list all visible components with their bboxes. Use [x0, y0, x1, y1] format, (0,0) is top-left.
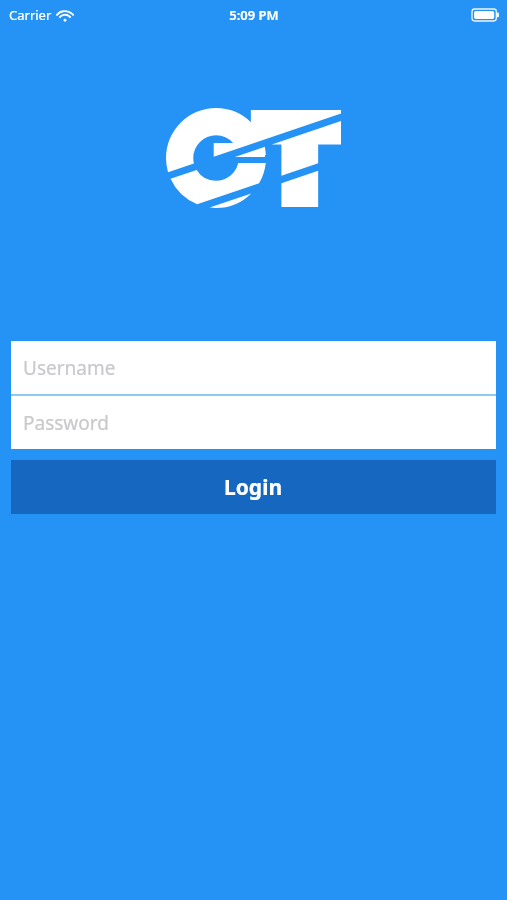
- staticText: Login: [224, 473, 283, 502]
- staticText: Carrier: [9, 6, 52, 24]
- button[interactable]: Login: [11, 460, 496, 514]
- button[interactable]: Username: [11, 341, 496, 394]
- other: Battery full: [472, 9, 499, 21]
- staticText: Password: [23, 410, 109, 436]
- staticText: 5:09 PM: [229, 6, 279, 24]
- staticText: Username: [23, 355, 116, 381]
- other: Wi-Fi: [58, 10, 72, 21]
- other: GT logo: [166, 108, 341, 208]
- button[interactable]: Password: [11, 396, 496, 449]
